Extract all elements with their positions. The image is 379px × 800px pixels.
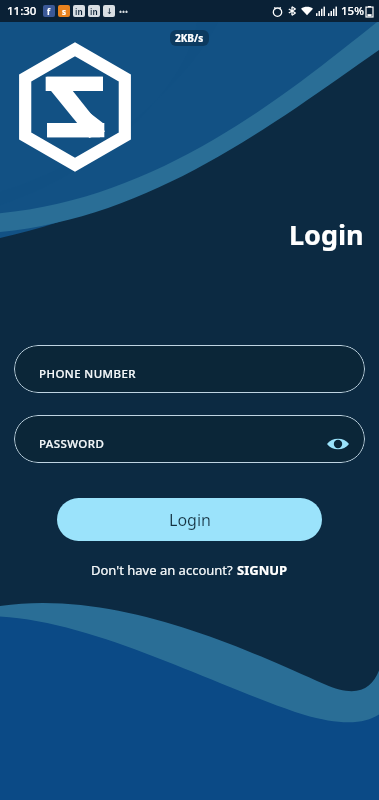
- button[interactable]: Don't have an account?: [14, 561, 365, 579]
- button[interactable]: PHONE NUMBER: [14, 345, 365, 393]
- staticText: ↓: [106, 7, 113, 16]
- staticText: in: [75, 6, 83, 17]
- staticText: s: [62, 6, 67, 17]
- staticText: Login: [169, 509, 211, 531]
- button[interactable]: PASSWORD: [14, 415, 365, 463]
- staticText: Don't have an account?: [91, 561, 237, 579]
- button[interactable]: Show password: [325, 431, 351, 457]
- staticText: PASSWORD: [39, 436, 105, 452]
- staticText: •••: [119, 6, 129, 17]
- staticText: 15%: [341, 3, 364, 19]
- staticText: SIGNUP: [237, 561, 288, 579]
- staticText: 11:30: [7, 3, 37, 19]
- staticText: Login: [289, 216, 364, 253]
- staticText: in: [90, 6, 98, 17]
- staticText: 2KB/s: [175, 31, 204, 45]
- staticText: f: [47, 6, 51, 17]
- staticText: PHONE NUMBER: [39, 366, 136, 382]
- button[interactable]: Login: [57, 498, 322, 541]
